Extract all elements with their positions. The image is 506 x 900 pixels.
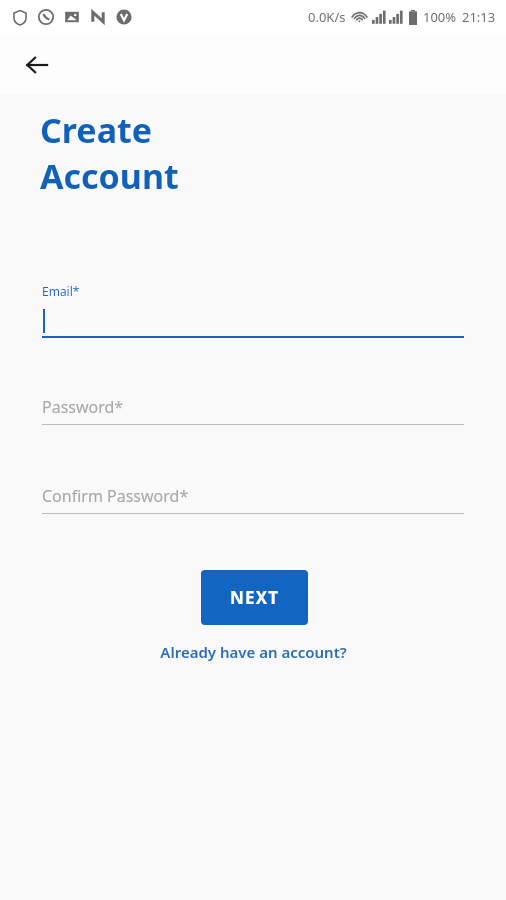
- staticText: 21:13: [462, 8, 496, 26]
- staticText: Account: [40, 153, 179, 199]
- button[interactable]: NEXT: [201, 570, 308, 625]
- button[interactable]: Confirm Password*: [42, 485, 464, 514]
- button[interactable]: Password*: [42, 396, 464, 425]
- staticText: Already have an account?: [160, 642, 347, 662]
- staticText: Create: [40, 107, 153, 153]
- staticText: Password*: [42, 396, 124, 418]
- staticText: NEXT: [230, 586, 280, 609]
- button[interactable]: Back: [13, 41, 61, 89]
- staticText: Confirm Password*: [42, 485, 189, 507]
- button[interactable]: Already have an account?: [154, 640, 353, 664]
- staticText: Email*: [42, 283, 80, 299]
- staticText: 0.0K/s: [308, 8, 346, 26]
- button[interactable]: Email*: [42, 283, 464, 338]
- staticText: 100%: [423, 8, 457, 26]
